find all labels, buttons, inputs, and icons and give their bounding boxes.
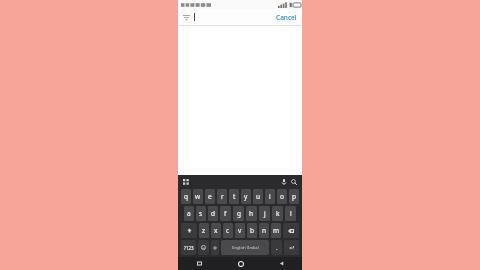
button[interactable]: r: [217, 189, 227, 204]
button[interactable]: q: [181, 189, 191, 204]
staticText: z: [202, 226, 206, 235]
staticText: .: [276, 244, 278, 252]
button[interactable]: l: [285, 206, 296, 221]
button[interactable]: j: [259, 206, 270, 221]
button[interactable]: y: [241, 189, 251, 204]
staticText: ?123: [184, 245, 194, 251]
button[interactable]: h: [246, 206, 257, 221]
staticText: p: [292, 192, 296, 201]
staticText: u: [256, 192, 261, 201]
staticText: o: [280, 192, 284, 201]
button[interactable]: f: [220, 206, 231, 221]
button[interactable]: v: [235, 223, 245, 238]
button[interactable]: Search: [289, 177, 299, 187]
button[interactable]: k: [272, 206, 283, 221]
button[interactable]: shift: [181, 223, 197, 238]
button[interactable]: Enter: [284, 240, 299, 255]
button[interactable]: t: [229, 189, 239, 204]
button[interactable]: s: [196, 206, 206, 221]
staticText: English (India): [232, 245, 259, 250]
staticText: n: [262, 226, 267, 235]
button[interactable]: b: [247, 223, 257, 238]
staticText: m: [273, 226, 280, 235]
staticText: l: [290, 209, 292, 218]
button[interactable]: Voice input: [279, 177, 289, 187]
button[interactable]: Backspace: [283, 223, 299, 238]
staticText: r: [221, 192, 224, 201]
staticText: i: [269, 192, 271, 201]
button[interactable]: i: [265, 189, 275, 204]
button[interactable]: a: [184, 206, 194, 221]
button[interactable]: ?123: [181, 240, 196, 255]
staticText: a: [187, 209, 191, 218]
button[interactable]: n: [259, 223, 269, 238]
button[interactable]: w: [193, 189, 203, 204]
staticText: Cancel: [276, 13, 297, 22]
button[interactable]: Back: [261, 257, 302, 270]
staticText: h: [249, 209, 254, 218]
button[interactable]: Keyboard toolbar: [181, 177, 190, 186]
button[interactable]: p: [289, 189, 299, 204]
staticText: t: [233, 192, 236, 201]
button[interactable]: g: [233, 206, 244, 221]
staticText: d: [211, 209, 215, 218]
button[interactable]: English (India): [221, 240, 269, 255]
staticText: y: [244, 192, 248, 201]
button[interactable]: Emoji: [198, 240, 209, 255]
button[interactable]: m: [271, 223, 281, 238]
button[interactable]: Period: [271, 240, 282, 255]
button[interactable]: u: [253, 189, 263, 204]
staticText: s: [199, 209, 203, 218]
staticText: c: [226, 226, 230, 235]
staticText: g: [237, 209, 241, 218]
button[interactable]: Recents: [178, 257, 220, 270]
button[interactable]: Home: [220, 257, 261, 270]
staticText: b: [250, 226, 254, 235]
button[interactable]: x: [211, 223, 221, 238]
staticText: e: [208, 192, 212, 201]
button[interactable]: z: [199, 223, 209, 238]
staticText: x: [214, 226, 218, 235]
button[interactable]: e: [205, 189, 215, 204]
staticText: j: [264, 209, 266, 218]
button[interactable]: o: [277, 189, 287, 204]
staticText: f: [224, 209, 227, 218]
staticText: v: [238, 226, 242, 235]
button[interactable]: Settings: [211, 240, 219, 255]
button[interactable]: Cancel: [274, 12, 299, 23]
staticText: q: [184, 192, 188, 201]
button[interactable]: c: [223, 223, 233, 238]
staticText: k: [276, 209, 280, 218]
staticText: w: [195, 192, 201, 201]
button[interactable]: d: [208, 206, 218, 221]
button[interactable]: Search options: [181, 12, 192, 23]
